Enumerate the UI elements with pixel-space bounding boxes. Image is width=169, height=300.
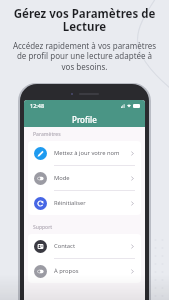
other: Ouvrir Mettez à jour votre nom bbox=[130, 151, 135, 156]
other: Ouvrir Contact bbox=[130, 244, 135, 249]
staticText: Contact bbox=[54, 242, 130, 250]
staticText: Gérez vos Paramètres de Lecture bbox=[6, 6, 163, 35]
other: Ouvrir À propos bbox=[130, 269, 135, 274]
staticText: À propos bbox=[54, 267, 130, 275]
staticText: Mode bbox=[54, 174, 130, 182]
other: Ouvrir Réinitialiser bbox=[130, 201, 135, 206]
staticText: Réinitialiser bbox=[54, 199, 130, 207]
staticText: 12:48 bbox=[30, 102, 45, 109]
staticText: Mettez à jour votre nom bbox=[54, 149, 130, 157]
other: Ouvrir Mode bbox=[130, 176, 135, 181]
button[interactable]: Contact bbox=[28, 234, 141, 258]
staticText: Accédez rapidement à vos paramètres de p… bbox=[10, 40, 159, 73]
button[interactable]: Mode bbox=[28, 166, 141, 190]
button[interactable]: Réinitialiser bbox=[28, 191, 141, 215]
staticText: Paramètres bbox=[33, 131, 61, 138]
button[interactable]: À propos bbox=[28, 259, 141, 283]
staticText: Profile bbox=[72, 114, 97, 125]
button[interactable]: Mettez à jour votre nom bbox=[28, 141, 141, 165]
staticText: Support bbox=[33, 224, 53, 231]
